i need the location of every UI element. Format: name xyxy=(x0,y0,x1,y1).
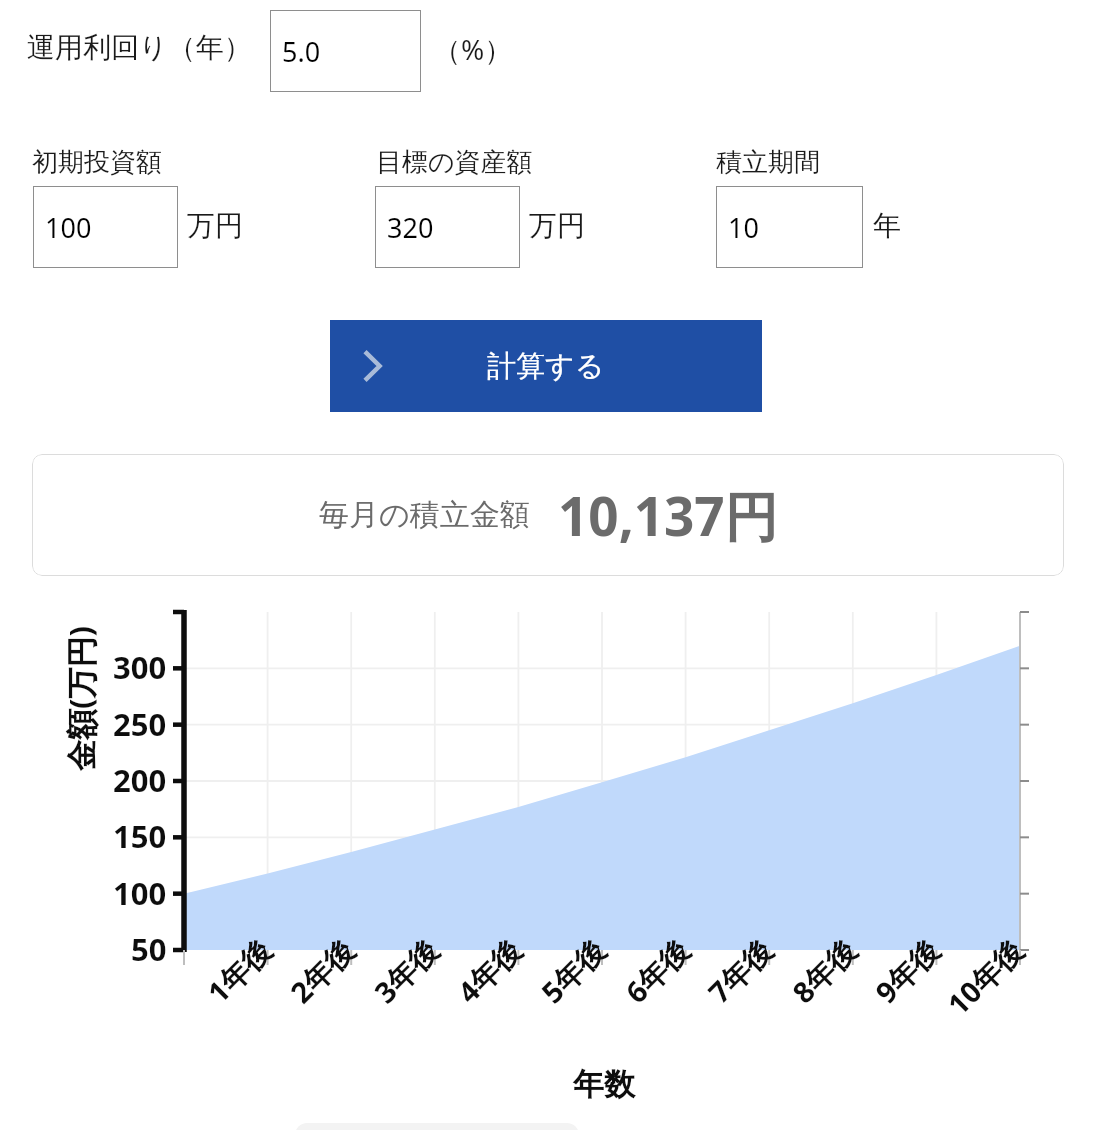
staticText: 5.0 xyxy=(282,33,321,70)
button[interactable]: 100 xyxy=(33,186,178,268)
staticText: 2年後 xyxy=(281,930,363,1012)
staticText: 4年後 xyxy=(448,930,530,1012)
staticText: 250 xyxy=(113,703,167,745)
staticText: 320 xyxy=(387,209,434,246)
staticText: 200 xyxy=(113,759,167,801)
button[interactable]: 5.0 xyxy=(270,10,421,92)
staticText: 年 xyxy=(873,208,901,243)
staticText: 50 xyxy=(131,928,167,970)
staticText: 金額(万円) xyxy=(59,625,101,771)
staticText: 150 xyxy=(113,815,167,857)
staticText: 9年後 xyxy=(866,930,948,1012)
staticText: 初期投資額 xyxy=(32,146,162,179)
button[interactable]: 10 xyxy=(716,186,863,268)
staticText: 100 xyxy=(113,872,167,914)
staticText: 8年後 xyxy=(783,930,865,1012)
staticText: 6年後 xyxy=(616,930,698,1012)
staticText: 積立期間 xyxy=(716,146,820,179)
button[interactable]: 毎月の積立金額 xyxy=(32,454,1064,576)
staticText: 10,137円 xyxy=(558,479,778,551)
staticText: 3年後 xyxy=(365,930,447,1012)
staticText: 目標の資産額 xyxy=(376,146,533,179)
staticText: 5年後 xyxy=(532,930,614,1012)
staticText: 万円 xyxy=(529,208,585,243)
staticText: 100 xyxy=(45,209,92,246)
staticText: 7年後 xyxy=(699,930,781,1012)
button[interactable]: 計算する xyxy=(330,320,762,412)
staticText: 毎月の積立金額 xyxy=(319,496,530,534)
staticText: 10 xyxy=(728,209,759,246)
staticText: 計算する xyxy=(487,348,605,385)
staticText: 運用利回り（年） xyxy=(27,30,252,65)
staticText: （%） xyxy=(433,30,513,68)
staticText: 万円 xyxy=(187,208,243,243)
staticText: 年数 xyxy=(573,1065,635,1104)
button[interactable]: 320 xyxy=(375,186,520,268)
staticText: 300 xyxy=(113,646,167,688)
staticText: 1年後 xyxy=(198,930,280,1012)
staticText: 10年後 xyxy=(938,930,1032,1024)
